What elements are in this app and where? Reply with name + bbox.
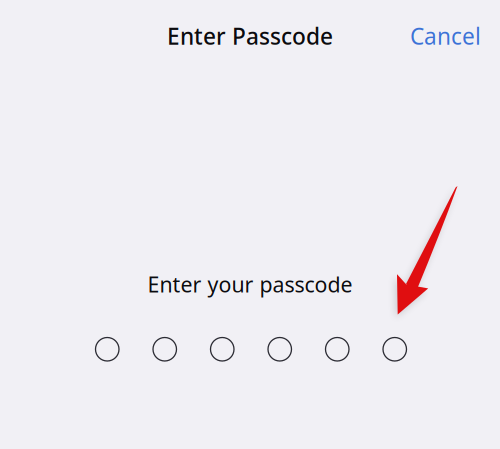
button[interactable]: Enter your passcode xyxy=(93,270,406,361)
staticText: Enter your passcode xyxy=(147,270,352,298)
staticText: Cancel xyxy=(410,21,481,51)
button[interactable]: Cancel xyxy=(402,15,489,57)
staticText: Enter Passcode xyxy=(167,21,333,51)
